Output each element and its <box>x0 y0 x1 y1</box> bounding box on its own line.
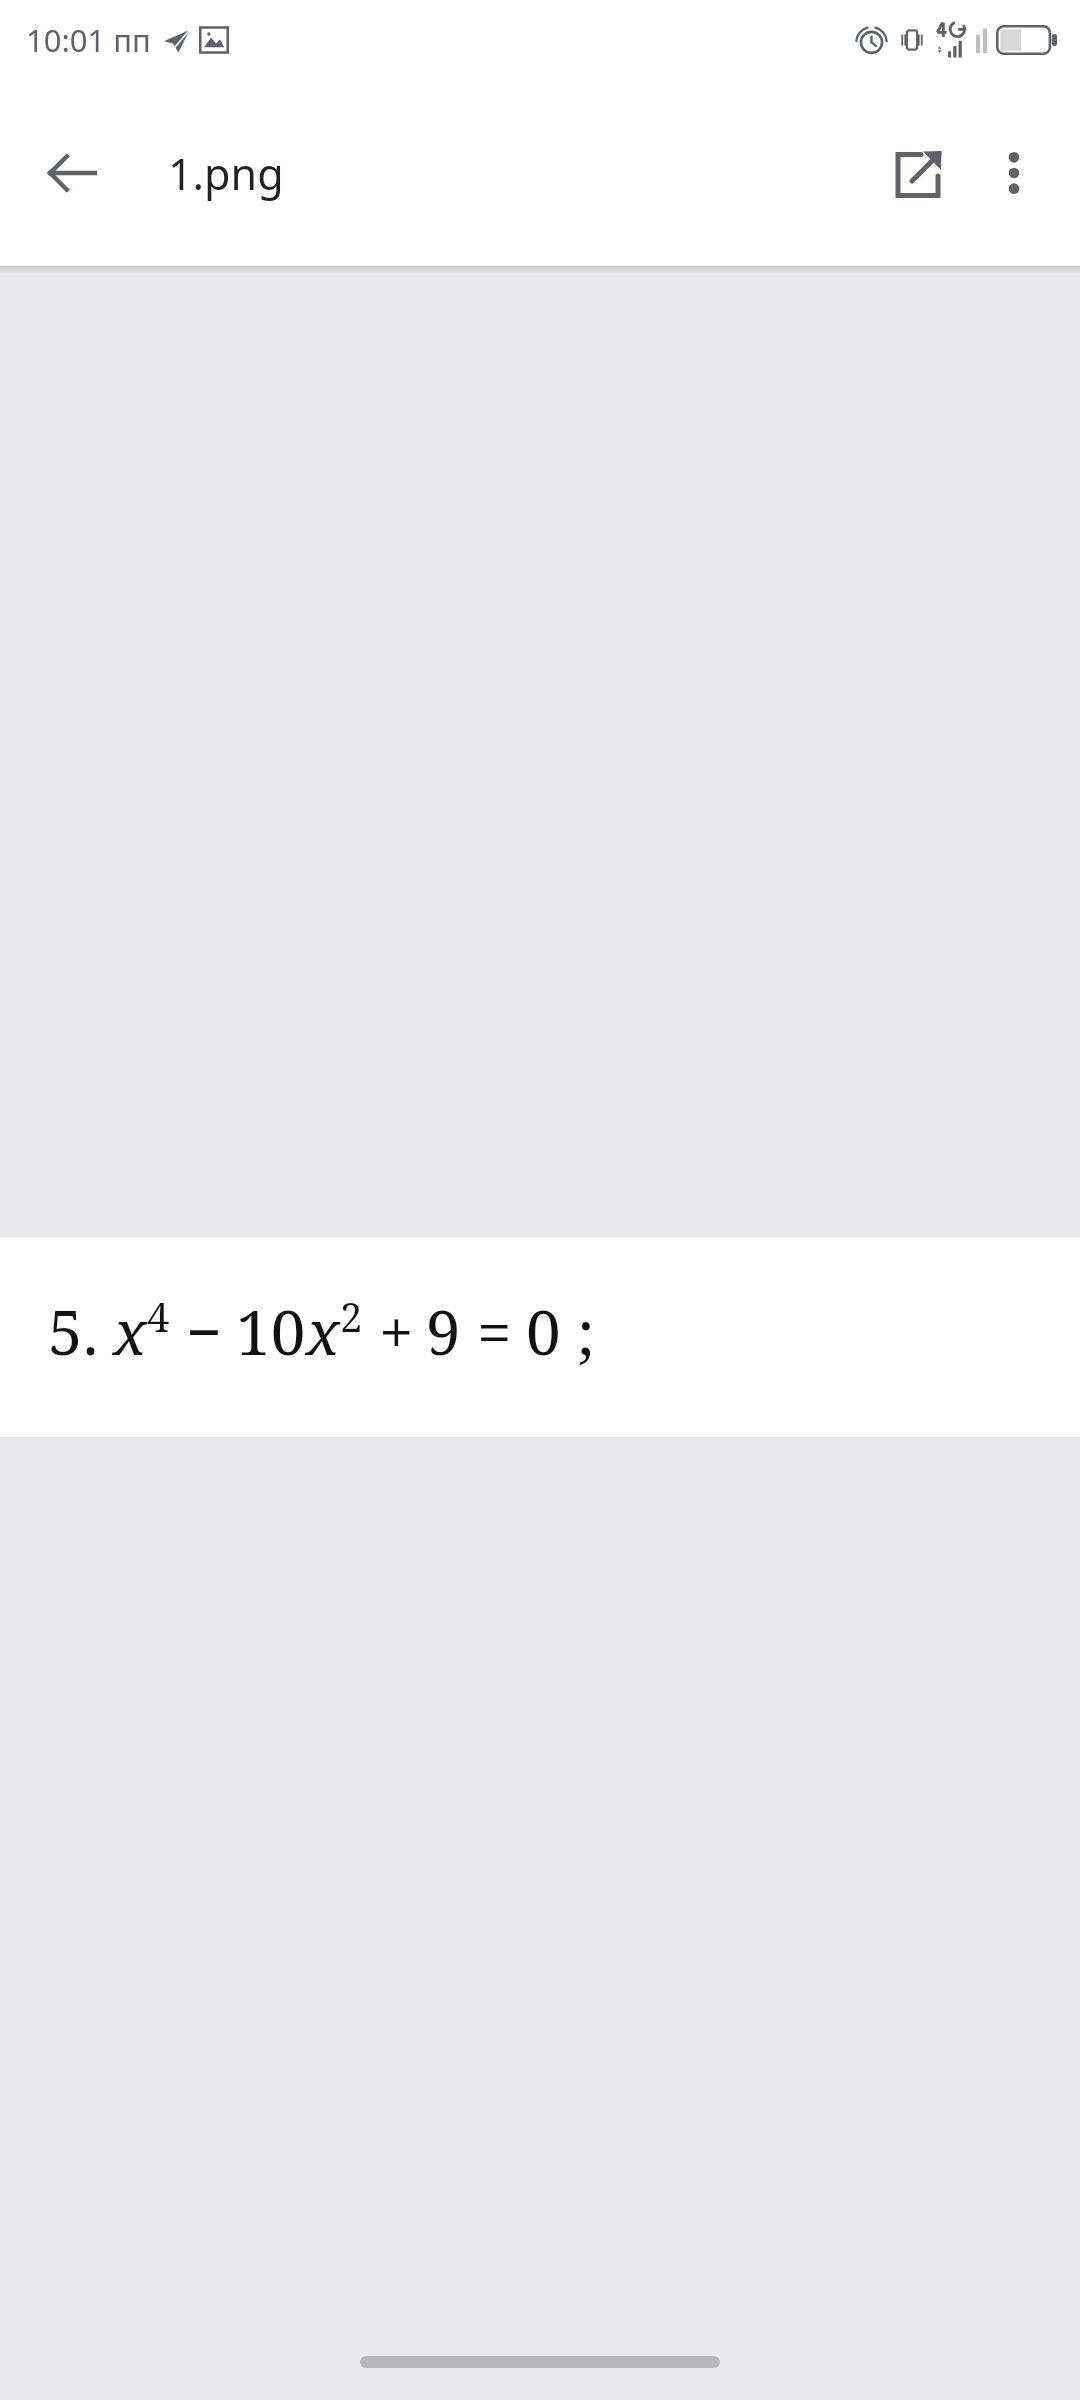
button[interactable]: Open in new <box>870 125 966 221</box>
staticText: ; <box>577 1289 595 1373</box>
staticText: x <box>306 1289 340 1373</box>
staticText: + <box>379 1289 414 1373</box>
staticText: 4 <box>147 1289 170 1343</box>
staticText: 1.png <box>168 144 284 203</box>
staticText: − <box>186 1289 222 1373</box>
staticText: = <box>477 1289 512 1373</box>
staticText: x <box>113 1289 147 1373</box>
staticText: 5. <box>48 1289 99 1373</box>
staticText: 10:01 пп <box>26 19 151 61</box>
staticText: 9 <box>426 1289 461 1373</box>
staticText: 0 <box>526 1289 561 1373</box>
button[interactable]: More options <box>966 125 1062 221</box>
staticText: 2 <box>340 1289 363 1343</box>
button[interactable]: Back <box>24 125 120 221</box>
staticText: 10 <box>236 1289 306 1373</box>
